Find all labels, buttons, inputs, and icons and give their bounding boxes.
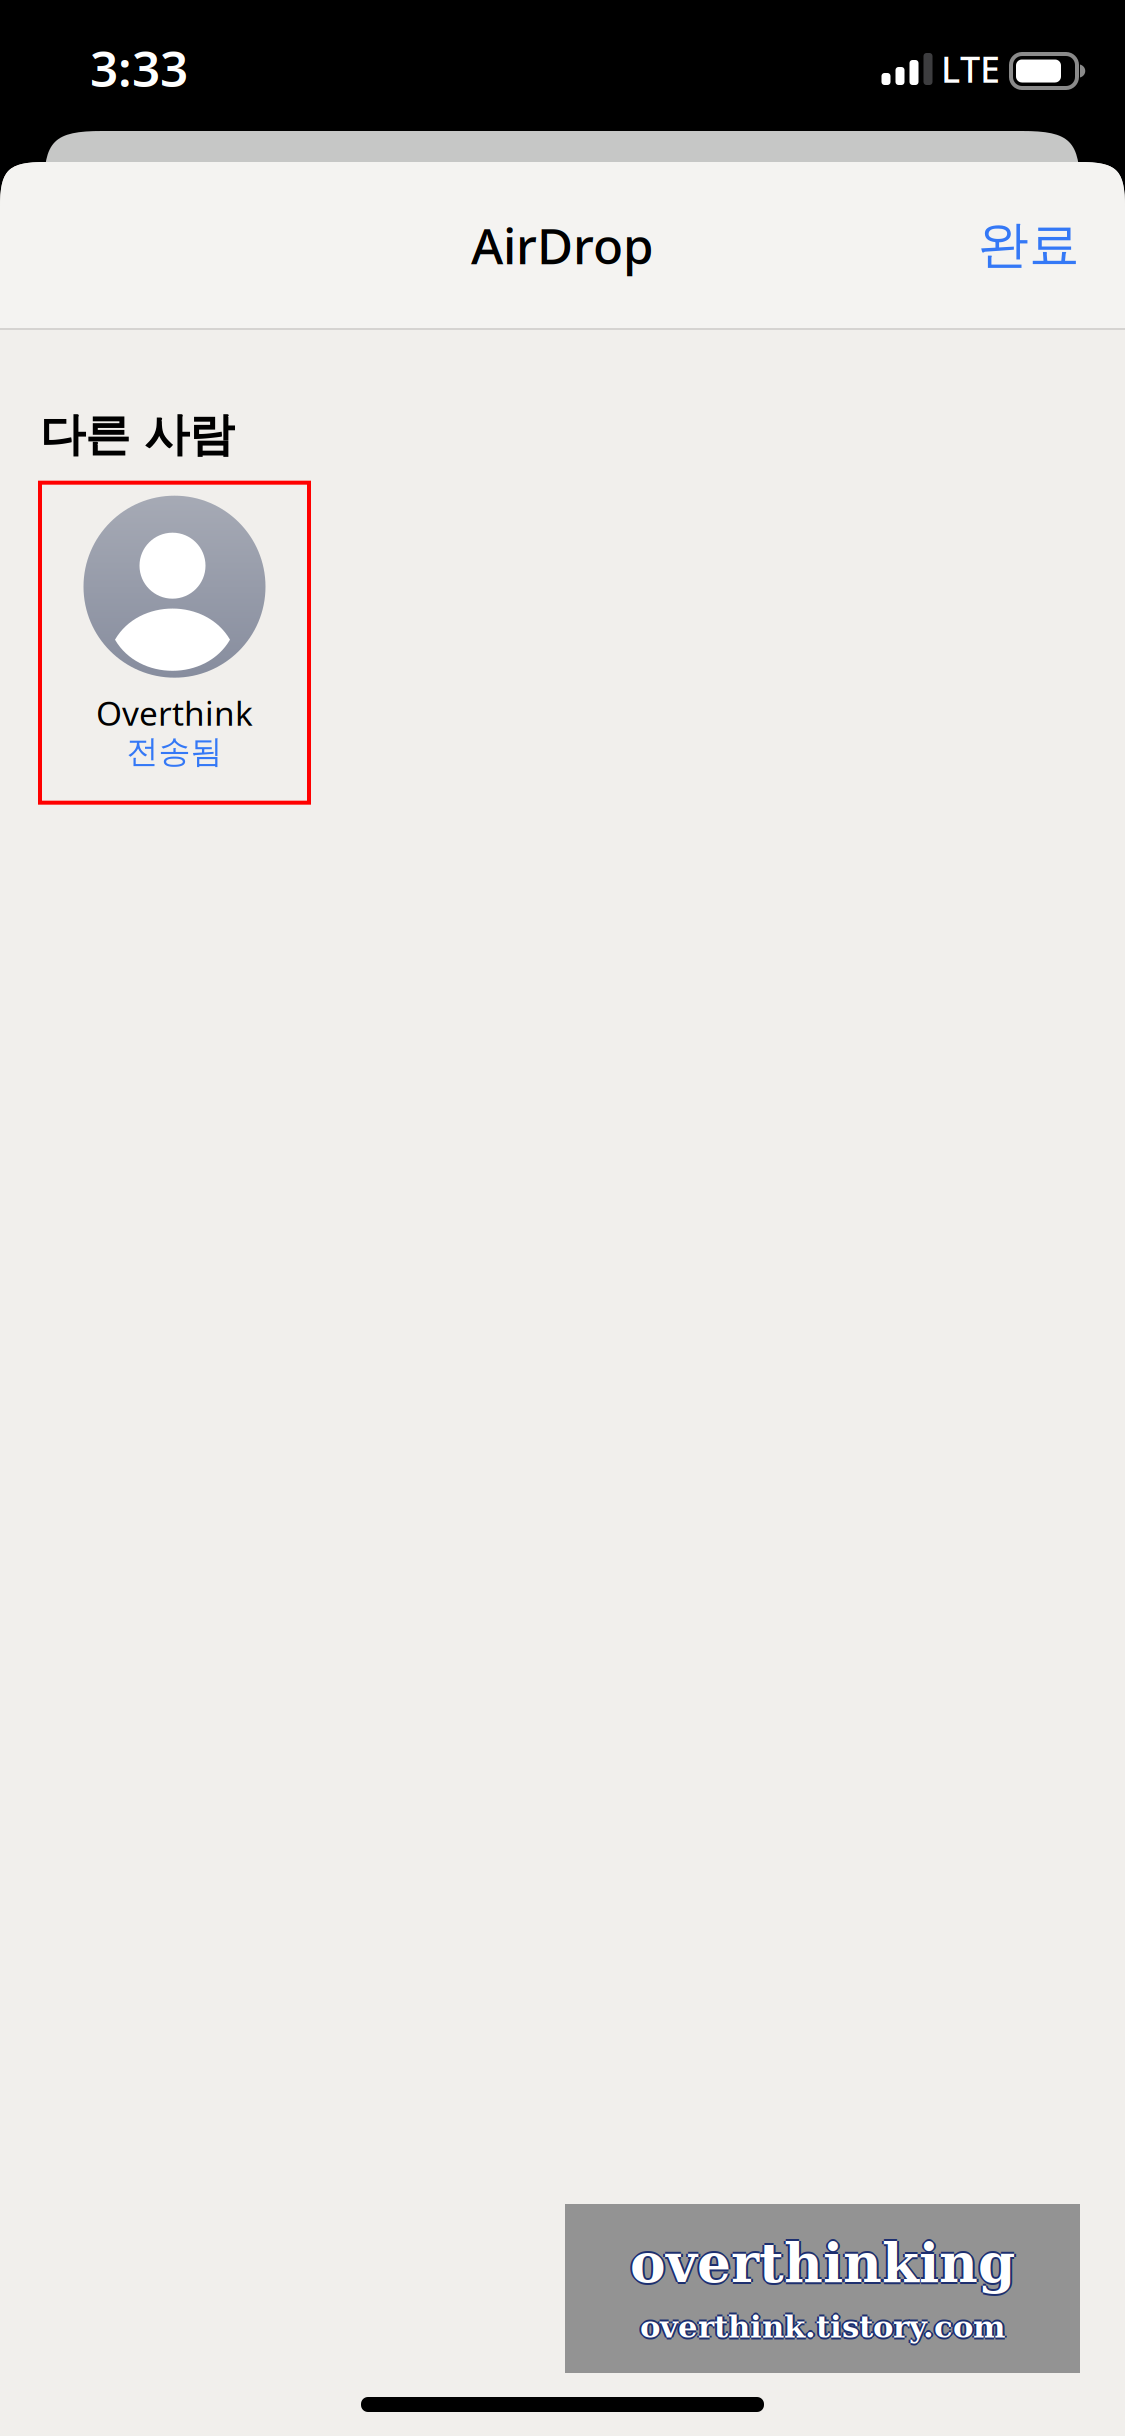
staticText: LTE bbox=[941, 45, 1000, 93]
staticText: 3:33 bbox=[90, 35, 188, 100]
staticText: overthinking bbox=[628, 2232, 1013, 2295]
staticText: overthinking bbox=[632, 2232, 1017, 2295]
staticText: overthink.tistory.com bbox=[640, 2307, 1005, 2343]
button[interactable]: 완료 bbox=[958, 192, 1100, 298]
staticText: overthink.tistory.com bbox=[642, 2309, 1007, 2345]
staticText: overthinking bbox=[630, 2232, 1015, 2295]
staticText: 다른 사람 bbox=[40, 407, 234, 463]
staticText: overthink.tistory.com bbox=[640, 2311, 1005, 2347]
staticText: AirDrop bbox=[471, 212, 654, 278]
staticText: overthinking bbox=[630, 2234, 1015, 2297]
staticText: overthinking bbox=[630, 2230, 1015, 2293]
staticText: 완료 bbox=[978, 214, 1080, 276]
staticText: Overthink bbox=[96, 691, 253, 735]
staticText: overthink.tistory.com bbox=[640, 2309, 1005, 2345]
button[interactable]: Overthink bbox=[40, 483, 309, 803]
staticText: overthink.tistory.com bbox=[638, 2309, 1003, 2345]
staticText: 전송됨 bbox=[126, 732, 222, 771]
